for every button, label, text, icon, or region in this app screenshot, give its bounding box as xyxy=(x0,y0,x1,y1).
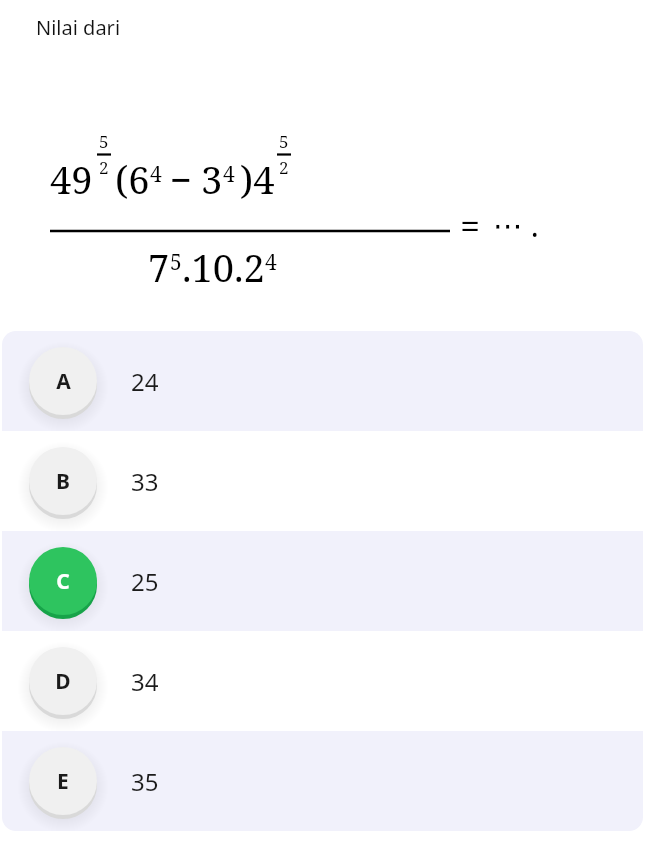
staticText: 2 xyxy=(99,156,109,179)
staticText: 4 xyxy=(223,160,235,189)
staticText: 5 xyxy=(170,248,182,277)
staticText: 33 xyxy=(131,465,159,498)
staticText: 7 xyxy=(148,241,170,293)
button[interactable]: A xyxy=(2,331,643,431)
staticText: 5 xyxy=(99,130,109,153)
staticText: 4 xyxy=(265,248,277,277)
staticText: .10.2 xyxy=(182,241,265,293)
staticText: 35 xyxy=(131,765,159,798)
staticText: )4 xyxy=(240,153,275,205)
staticText: B xyxy=(56,467,70,496)
button[interactable]: C xyxy=(2,531,643,631)
staticText: 25 xyxy=(131,565,159,598)
button[interactable]: E xyxy=(2,731,643,831)
staticText: 2 xyxy=(279,156,289,179)
staticText: Nilai dari xyxy=(36,14,121,41)
staticText: C xyxy=(56,567,70,596)
staticText: = xyxy=(460,201,481,250)
staticText: . xyxy=(531,205,539,246)
staticText: 5 xyxy=(279,130,289,153)
staticText: 4 xyxy=(150,160,162,189)
staticText: − xyxy=(170,153,193,205)
staticText: ⋯ xyxy=(493,208,523,243)
button[interactable]: D xyxy=(2,631,643,731)
staticText: 49 xyxy=(50,153,93,205)
staticText: 34 xyxy=(131,665,159,698)
staticText: E xyxy=(57,767,69,796)
button[interactable]: B xyxy=(2,431,643,531)
staticText: 24 xyxy=(131,365,159,398)
staticText: D xyxy=(55,667,71,696)
staticText: (6 xyxy=(115,153,150,205)
staticText: 3 xyxy=(201,153,223,205)
staticText: A xyxy=(56,367,71,396)
